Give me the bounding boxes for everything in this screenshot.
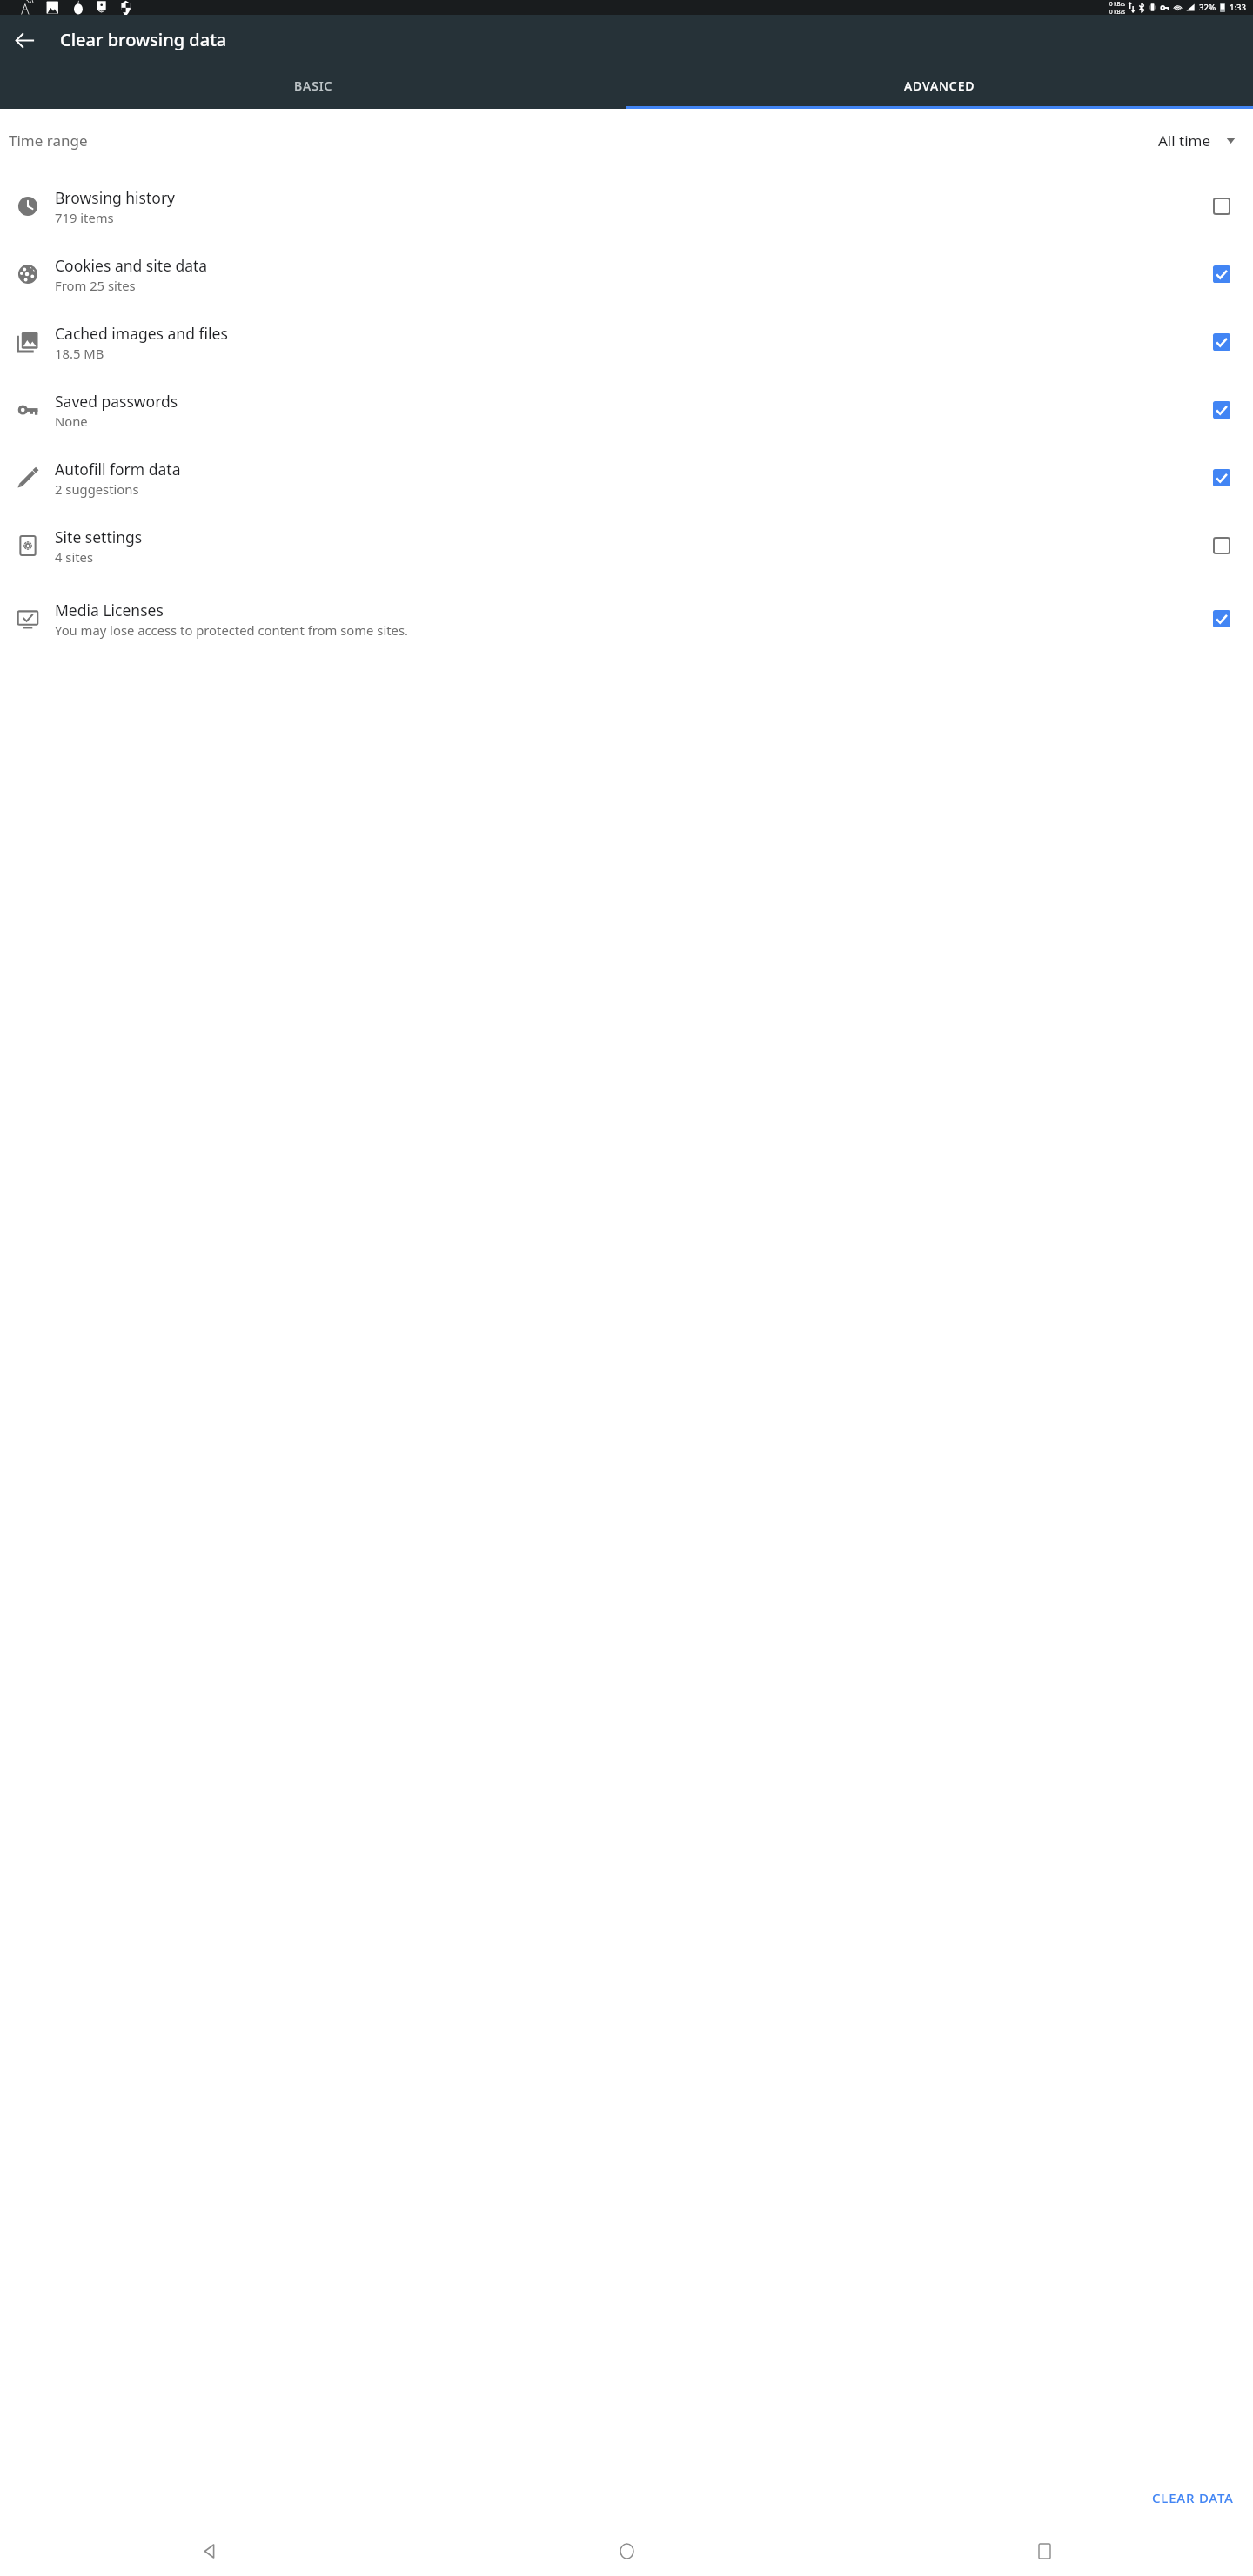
button[interactable]: Checked xyxy=(1204,257,1239,292)
staticText: None xyxy=(55,413,88,430)
staticText: Saved passwords xyxy=(55,391,178,412)
button[interactable]: Checked xyxy=(1204,460,1239,495)
staticText: Autofill form data xyxy=(55,459,181,480)
button[interactable]: CLEAR DATA xyxy=(1142,2480,1244,2515)
staticText: 0 kB/s xyxy=(1109,8,1126,15)
staticText: 1:33 xyxy=(1230,2,1247,13)
staticText: CLEAR DATA xyxy=(1152,2489,1234,2506)
button[interactable]: Cookies and site data xyxy=(0,240,1253,308)
button[interactable]: Home xyxy=(418,2526,835,2576)
button[interactable]: Time range xyxy=(0,109,1253,172)
staticText: All time xyxy=(1158,131,1211,151)
staticText: 18.5 MB xyxy=(55,345,104,362)
button[interactable]: Back xyxy=(0,2526,418,2576)
button[interactable]: Cached images and files xyxy=(0,308,1253,376)
button[interactable]: BASIC xyxy=(0,64,626,106)
staticText: Media Licenses xyxy=(55,600,164,621)
button[interactable]: Recent apps xyxy=(835,2526,1253,2576)
button[interactable]: Checked xyxy=(1204,325,1239,359)
staticText: 32% xyxy=(1199,2,1216,13)
button[interactable]: Unchecked xyxy=(1204,189,1239,224)
staticText: Browsing history xyxy=(55,187,176,208)
staticText: 4 sites xyxy=(55,548,93,566)
staticText: BASIC xyxy=(294,77,333,94)
staticText: ADVANCED xyxy=(904,77,975,94)
button[interactable]: Checked xyxy=(1204,601,1239,636)
staticText: 2 suggestions xyxy=(55,480,139,498)
staticText: From 25 sites xyxy=(55,277,136,294)
button[interactable]: Browsing history xyxy=(0,172,1253,240)
button[interactable]: Unchecked xyxy=(1204,528,1239,563)
button[interactable]: Autofill form data xyxy=(0,444,1253,512)
staticText: Site settings xyxy=(55,527,143,547)
staticText: Cookies and site data xyxy=(55,255,208,276)
staticText: You may lose access to protected content… xyxy=(55,621,408,639)
staticText: 719 items xyxy=(55,209,114,226)
staticText: Time range xyxy=(9,131,88,151)
button[interactable]: ADVANCED xyxy=(626,64,1253,106)
button[interactable]: Navigate up xyxy=(3,19,45,61)
button[interactable]: Site settings xyxy=(0,512,1253,580)
button[interactable]: Media Licenses xyxy=(0,580,1253,658)
button[interactable]: Checked xyxy=(1204,392,1239,427)
staticText: Cached images and files xyxy=(55,323,228,344)
staticText: 0 kB/s xyxy=(1109,0,1126,8)
button[interactable]: Saved passwords xyxy=(0,376,1253,444)
staticText: Clear browsing data xyxy=(60,28,227,51)
